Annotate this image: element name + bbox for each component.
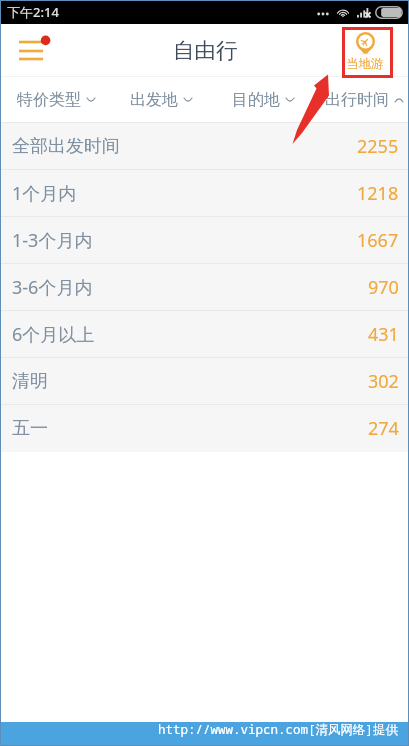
staticText: 1667 [357, 228, 399, 253]
button[interactable]: 当地游 [342, 27, 392, 76]
button[interactable]: 五一 [0, 405, 409, 452]
staticText: 出发地 [130, 90, 178, 110]
staticText: 2255 [357, 134, 399, 159]
staticText: 3-6个月内 [12, 275, 93, 300]
button[interactable]: 目的地 [224, 77, 301, 123]
staticText: 1个月内 [12, 181, 77, 206]
staticText: 970 [368, 275, 399, 300]
staticText: 当地游 [346, 56, 384, 72]
button[interactable]: 清明 [0, 358, 409, 405]
staticText: 302 [368, 369, 399, 394]
button[interactable]: 1个月内 [0, 170, 409, 217]
button[interactable]: 6个月以上 [0, 311, 409, 358]
button[interactable]: 全部出发时间 [0, 123, 409, 170]
staticText: 目的地 [232, 90, 280, 110]
button[interactable]: Menu [9, 29, 53, 72]
staticText: 1218 [357, 181, 399, 206]
staticText: 出行时间 [325, 90, 389, 110]
staticText: 1-3个月内 [12, 228, 93, 253]
staticText: 自由行 [173, 37, 238, 64]
button[interactable]: 特价类型 [9, 77, 103, 123]
staticText: 清明 [12, 370, 48, 393]
staticText: 下午2:14 [7, 3, 59, 21]
button[interactable]: 1-3个月内 [0, 217, 409, 264]
staticText: http://www.vipcn.com[清风网络]提供 [158, 721, 399, 738]
button[interactable]: 3-6个月内 [0, 264, 409, 311]
staticText: 特价类型 [17, 90, 81, 110]
button[interactable]: 出行时间 [317, 77, 409, 123]
staticText: 五一 [12, 417, 48, 440]
button[interactable]: 出发地 [122, 77, 199, 123]
staticText: 431 [368, 322, 399, 347]
staticText: 全部出发时间 [12, 135, 120, 158]
staticText: 6个月以上 [12, 322, 95, 347]
staticText: 274 [368, 416, 399, 441]
